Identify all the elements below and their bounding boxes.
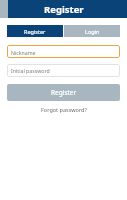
button[interactable]: Register [7,25,63,37]
button[interactable]: Initial password [7,64,120,77]
button[interactable]: Register [7,84,120,101]
staticText: Nickname [11,49,36,56]
staticText: Register [44,3,84,16]
button[interactable]: Login [64,25,120,37]
staticText: Register [24,28,46,35]
staticText: Initial password [11,67,50,74]
button[interactable]: Forgot password? [39,104,89,115]
staticText: Register [51,88,77,97]
button[interactable]: Nickname [7,45,120,58]
staticText: Login [85,28,100,35]
